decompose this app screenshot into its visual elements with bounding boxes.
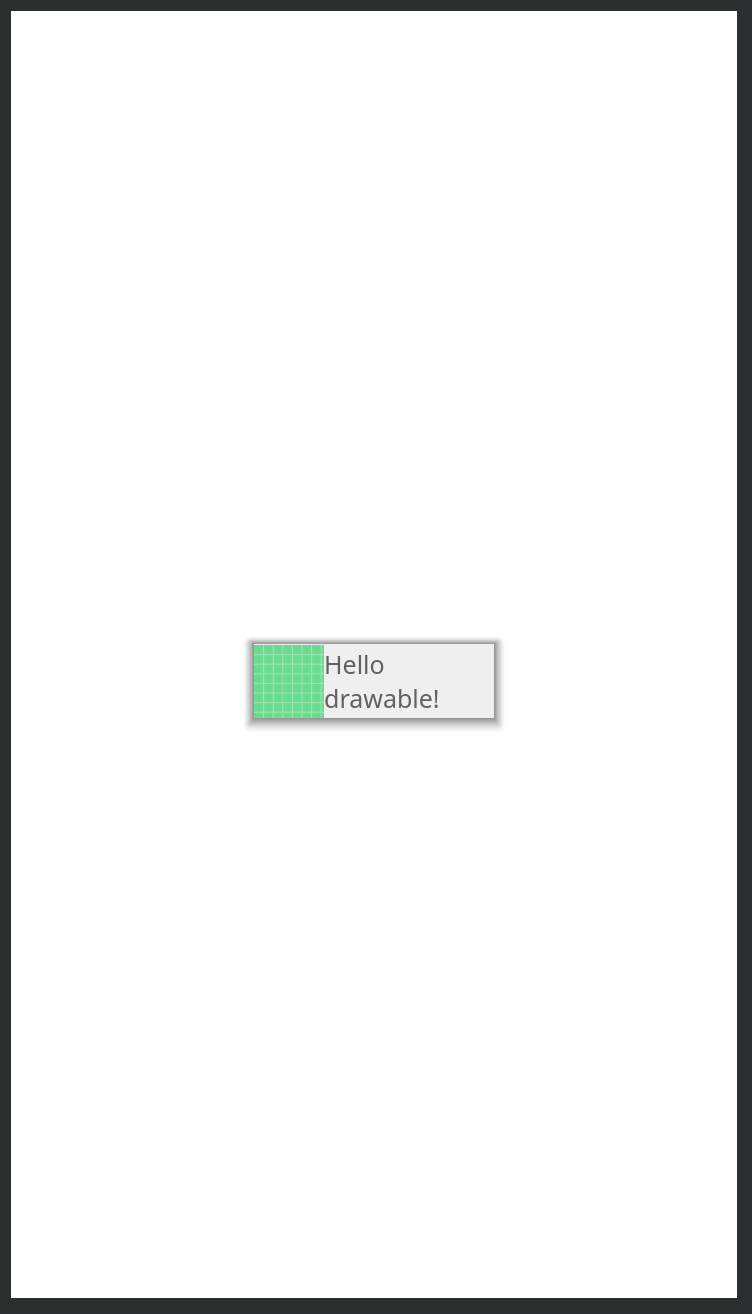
other: Drawable preview (254, 645, 324, 718)
staticText: Hello drawable! (324, 647, 494, 715)
button[interactable]: Drawable preview (254, 644, 494, 718)
